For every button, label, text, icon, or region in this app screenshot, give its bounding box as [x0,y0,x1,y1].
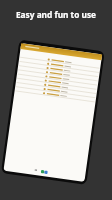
staticText: Easy and fun to use [0,9,112,20]
